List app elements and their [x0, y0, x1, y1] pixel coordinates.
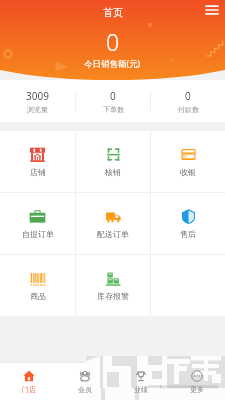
staticText: 浏览量: [27, 105, 48, 114]
button[interactable]: 自提订单: [0, 193, 75, 254]
staticText: 业绩: [134, 385, 148, 394]
staticText: 会员: [78, 385, 92, 394]
staticText: 店铺: [30, 167, 46, 177]
staticText: 配送订单: [97, 229, 129, 239]
staticText: 商品: [30, 291, 46, 301]
button[interactable]: 收银: [151, 131, 225, 192]
staticText: 收银: [180, 167, 196, 177]
button[interactable]: Menu: [202, 0, 222, 20]
staticText: 自提订单: [22, 229, 54, 239]
staticText: 3009: [26, 89, 49, 103]
staticText: 0: [110, 89, 116, 103]
button[interactable]: 业绩: [113, 363, 169, 400]
staticText: 更多: [190, 385, 204, 394]
button[interactable]: 核销: [76, 131, 150, 192]
staticText: 0: [185, 89, 191, 103]
button[interactable]: 库存报警: [76, 255, 150, 316]
button[interactable]: 门店: [0, 363, 57, 400]
button[interactable]: 配送订单: [76, 193, 150, 254]
staticText: 付款数: [178, 105, 199, 114]
button[interactable]: 0: [151, 80, 225, 122]
staticText: 0: [106, 26, 120, 57]
button[interactable]: 商品: [0, 255, 75, 316]
staticText: 下单数: [103, 105, 124, 114]
staticText: 首页: [103, 6, 123, 19]
staticText: 库存报警: [97, 291, 129, 301]
button[interactable]: 店铺: [0, 131, 75, 192]
staticText: 门店: [22, 385, 36, 394]
button[interactable]: 售后: [151, 193, 225, 254]
staticText: 核销: [105, 167, 121, 177]
button[interactable]: 3009: [0, 80, 75, 122]
staticText: 今日销售额(元): [84, 58, 141, 70]
button[interactable]: 会员: [57, 363, 113, 400]
button[interactable]: 0: [76, 80, 150, 122]
button[interactable]: 更多: [169, 363, 225, 400]
staticText: 售后: [180, 229, 196, 239]
